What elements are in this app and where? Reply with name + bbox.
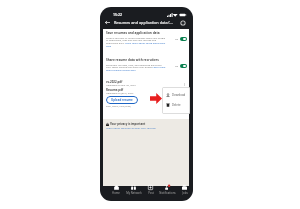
staticText: Uploaded on Jan 5, 2024 bbox=[106, 91, 134, 94]
staticText: DOC, DOCX, PDF (5MB) bbox=[106, 105, 131, 108]
button[interactable]: Upload resume bbox=[106, 96, 138, 104]
staticText: Home bbox=[112, 191, 120, 195]
button[interactable]: More options bbox=[181, 89, 187, 95]
button[interactable]: Help bbox=[178, 18, 187, 27]
button[interactable]: Download bbox=[162, 93, 190, 97]
staticText: Delete bbox=[172, 103, 181, 107]
staticText: Your privacy is important bbox=[110, 122, 146, 126]
staticText: Save resumes and application data bbox=[106, 31, 160, 35]
staticText: Resumes and application data (... bbox=[114, 20, 173, 25]
staticText: On bbox=[175, 65, 179, 68]
staticText: Share resume data with recruiters bbox=[106, 58, 159, 62]
button[interactable]: My Network bbox=[125, 184, 142, 201]
button[interactable]: Home bbox=[107, 184, 125, 201]
button[interactable]: More options bbox=[181, 81, 187, 87]
button[interactable]: Toggle bbox=[175, 58, 187, 68]
staticText: Learn about what we do with your resume bbox=[106, 126, 156, 129]
staticText: Jobs bbox=[182, 191, 188, 195]
staticText: On bbox=[175, 38, 179, 41]
button[interactable]: Back bbox=[103, 18, 112, 27]
staticText: My Network bbox=[126, 191, 142, 195]
button[interactable]: Jobs bbox=[176, 184, 193, 201]
button[interactable]: Delete bbox=[162, 103, 190, 107]
button[interactable]: Toggle bbox=[175, 31, 187, 41]
staticText: Recruiters can view, save, and download … bbox=[106, 63, 167, 72]
staticText: Post bbox=[148, 191, 154, 195]
staticText: Notifications bbox=[159, 191, 176, 195]
staticText: When a recruiter or hiring manager views… bbox=[106, 36, 167, 48]
staticText: Uploaded on Mar 28, 2024 bbox=[106, 83, 136, 86]
staticText: cv-2022.pdf bbox=[106, 80, 123, 84]
button[interactable]: Post bbox=[142, 184, 159, 201]
button[interactable]: Notifications bbox=[159, 184, 176, 201]
staticText: 15:22 bbox=[113, 12, 122, 17]
staticText: Upload resume bbox=[111, 98, 133, 102]
staticText: Download bbox=[172, 93, 186, 97]
staticText: Resume.pdf bbox=[106, 88, 124, 92]
